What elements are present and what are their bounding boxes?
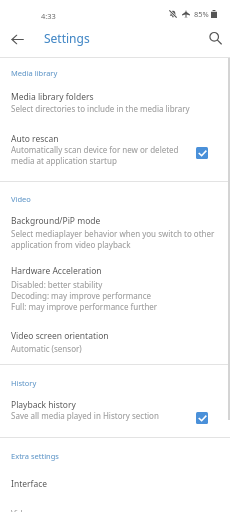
staticText: Select mediaplayer behavior when you swi… [11,228,215,239]
staticText: Video [11,508,33,512]
button[interactable]: Media library folders [0,86,230,116]
staticText: Disabled: better stability [11,279,103,290]
button[interactable]: Auto rescan [0,128,230,172]
staticText: Video [11,194,31,204]
staticText: Video screen orientation [11,330,109,342]
staticText: Automatic (sensor) [11,343,82,354]
staticText: Save all media played in History section [11,410,159,421]
staticText: media at application startup [11,155,117,166]
staticText: Playback history [11,399,76,411]
button[interactable]: Video screen orientation [0,325,230,358]
button[interactable]: Interface [0,473,230,503]
staticText: Extra settings [11,451,59,461]
button[interactable]: Hardware Acceleration [0,260,230,316]
button[interactable]: Enabled [196,147,208,159]
staticText: 85% [194,9,209,19]
button[interactable]: Playback history [0,394,230,428]
staticText: Select directories to include in the med… [11,103,190,114]
staticText: 4:33 [41,11,56,21]
button[interactable]: Enabled [196,412,208,424]
staticText: Media library [11,68,58,78]
staticText: Hardware Acceleration [11,265,102,277]
staticText: Decoding: may improve performance [11,290,152,301]
staticText: application from video playback [11,239,131,250]
staticText: Full: may improve performance further [11,301,158,312]
staticText: History [11,378,37,388]
staticText: Automatically scan device for new or del… [11,144,179,155]
staticText: Interface [11,478,48,490]
staticText: Background/PiP mode [11,215,101,227]
button[interactable]: Search [202,25,228,51]
button[interactable]: Background/PiP mode [0,210,230,255]
staticText: Settings [44,30,90,46]
button[interactable]: Navigate up [4,26,30,52]
staticText: Auto rescan [11,133,59,145]
staticText: Media library folders [11,91,94,103]
